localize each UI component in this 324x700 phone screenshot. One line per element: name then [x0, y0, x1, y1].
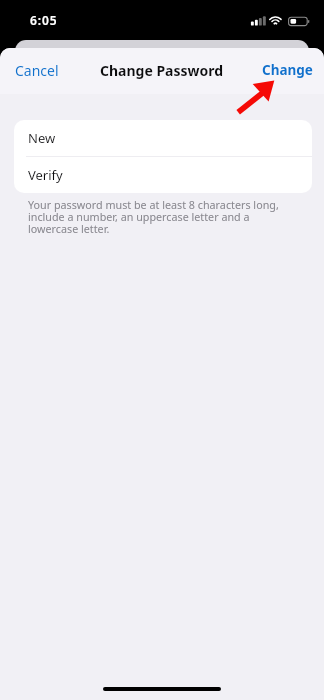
staticText: Cancel [15, 61, 59, 80]
staticText: New [28, 129, 56, 147]
button[interactable]: New [14, 120, 312, 156]
staticText: Verify [28, 166, 63, 184]
staticText: Change Password [100, 61, 224, 80]
staticText: Your password must be at least 8 charact… [28, 198, 290, 236]
button[interactable]: Cancel [0, 55, 71, 88]
button[interactable]: Verify [14, 157, 312, 193]
staticText: 6:05 [30, 12, 58, 28]
staticText: Change [262, 61, 313, 79]
button[interactable]: Change [250, 55, 324, 87]
